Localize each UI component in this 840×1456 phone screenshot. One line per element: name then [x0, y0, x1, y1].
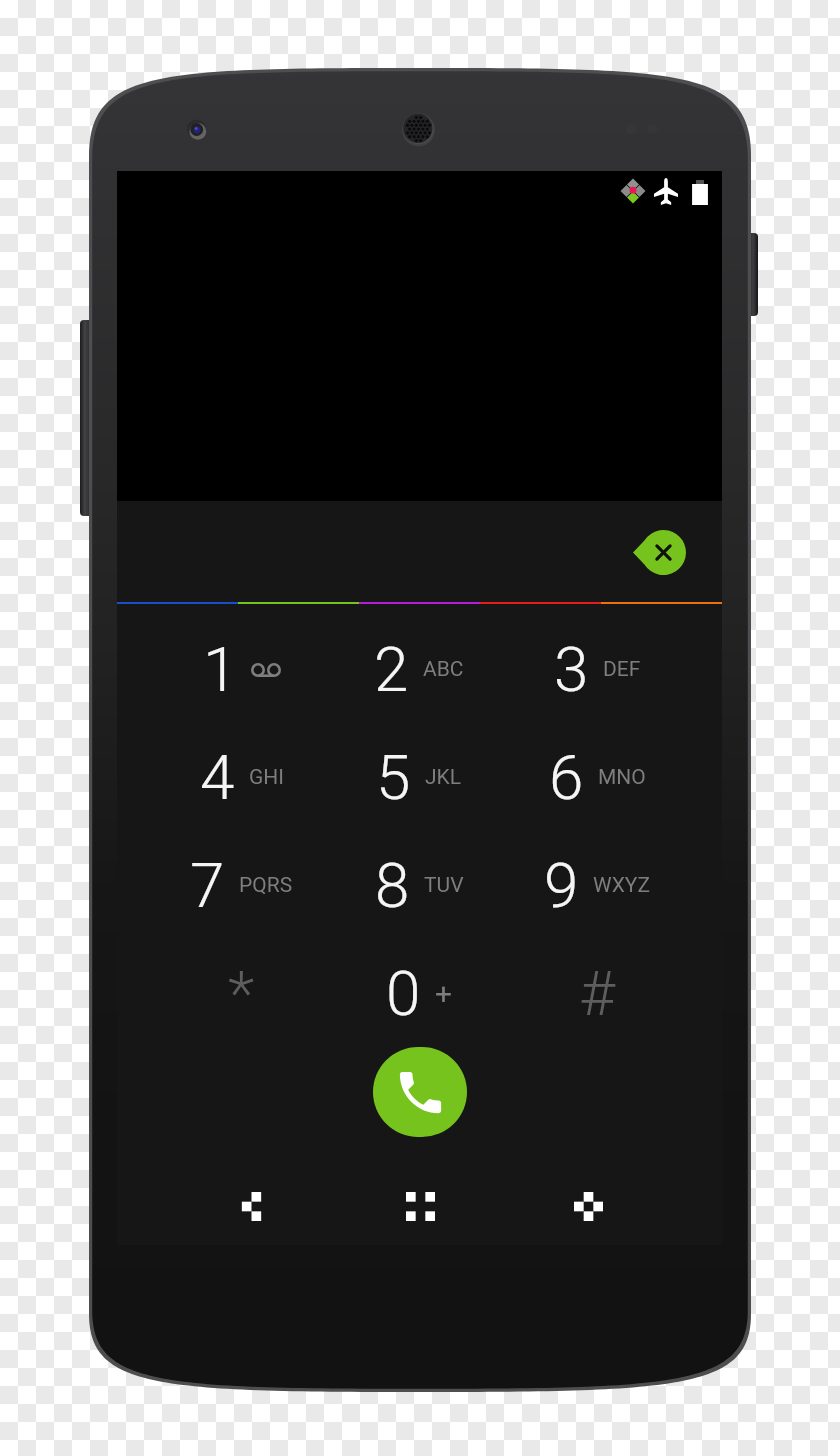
button[interactable]: Contacts: [560, 1178, 616, 1234]
staticText: WXYZ: [593, 873, 650, 898]
button[interactable]: Call: [373, 1047, 467, 1137]
staticText: MNO: [598, 765, 646, 790]
staticText: #: [579, 957, 616, 1030]
staticText: TUV: [424, 873, 464, 898]
staticText: 1: [203, 633, 238, 706]
staticText: 7: [190, 849, 225, 922]
staticText: 6: [549, 741, 584, 814]
button[interactable]: #: [508, 939, 686, 1047]
staticText: 9: [544, 849, 579, 922]
staticText: 3: [554, 633, 589, 706]
staticText: 8: [375, 849, 410, 922]
button[interactable]: 3: [508, 615, 686, 723]
button[interactable]: 0: [330, 939, 508, 1047]
button[interactable]: 9: [508, 831, 686, 939]
button[interactable]: 2: [330, 615, 508, 723]
staticText: GHI: [249, 765, 284, 790]
button[interactable]: Recents: [223, 1178, 279, 1234]
button[interactable]: 5: [330, 723, 508, 831]
staticText: 4: [200, 741, 235, 814]
staticText: DEF: [603, 657, 641, 682]
button[interactable]: 7: [153, 831, 330, 939]
staticText: 2: [374, 633, 409, 706]
staticText: *: [228, 957, 255, 1030]
button[interactable]: Delete: [624, 522, 695, 582]
button[interactable]: 8: [330, 831, 508, 939]
button[interactable]: 1: [153, 615, 330, 723]
button[interactable]: *: [153, 939, 330, 1047]
staticText: 5: [376, 741, 411, 814]
staticText: +: [435, 976, 453, 1011]
staticText: ABC: [423, 657, 464, 682]
staticText: JKL: [425, 765, 462, 790]
button[interactable]: 6: [508, 723, 686, 831]
button[interactable]: 4: [153, 723, 330, 831]
staticText: PQRS: [239, 873, 293, 898]
staticText: 0: [386, 957, 421, 1030]
button[interactable]: Dialpad: [392, 1178, 448, 1234]
